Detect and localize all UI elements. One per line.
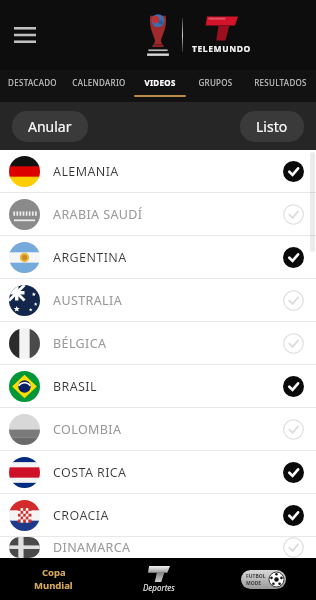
button[interactable]: BÉLGICA (0, 322, 316, 365)
button[interactable]: CALENDARIO (64, 70, 134, 102)
staticText: VIDEOS (144, 77, 176, 88)
button[interactable]: Listo (240, 111, 304, 142)
button[interactable]: Anular (12, 111, 88, 142)
button[interactable]: CROACIA (0, 494, 316, 537)
staticText: Anular (28, 117, 72, 136)
staticText: ARABIA SAUDÍ (53, 206, 283, 223)
staticText: COSTA RICA (53, 464, 283, 481)
staticText: DINAMARCA (53, 539, 283, 556)
staticText: CALENDARIO (72, 77, 126, 88)
staticText: FUTBOL (246, 573, 266, 580)
button[interactable]: GRUPOS (186, 70, 244, 102)
staticText: Copa (42, 566, 66, 579)
button[interactable]: VIDEOS (134, 70, 186, 102)
staticText: ARGENTINA (53, 249, 283, 266)
button[interactable]: ARGENTINA (0, 236, 316, 279)
button[interactable]: COSTA RICA (0, 451, 316, 494)
button[interactable]: BRASIL (0, 365, 316, 408)
staticText: COLOMBIA (53, 421, 283, 438)
button[interactable]: DINAMARCA (0, 537, 316, 558)
staticText: CROACIA (53, 507, 283, 524)
button[interactable]: ALEMANIA (0, 150, 316, 193)
staticText: RESULTADOS (254, 77, 307, 88)
staticText: Deportes (143, 582, 175, 593)
staticText: Mundial (34, 579, 73, 592)
button[interactable]: Telemundo Deportes (106, 558, 211, 600)
staticText: BRASIL (53, 378, 283, 395)
button[interactable]: RESULTADOS (244, 70, 316, 102)
button[interactable]: Fútbol Mode (211, 558, 316, 600)
button[interactable]: ARABIA SAUDÍ (0, 193, 316, 236)
button[interactable]: AUSTRALIA (0, 279, 316, 322)
staticText: MODE (246, 580, 262, 587)
button[interactable]: Menú (6, 16, 44, 54)
staticText: GRUPOS (198, 77, 233, 88)
staticText: AUSTRALIA (53, 292, 283, 309)
button[interactable]: COLOMBIA (0, 408, 316, 451)
staticText: TELEMUNDO (192, 43, 251, 55)
staticText: BÉLGICA (53, 335, 283, 352)
staticText: DESTACADO (8, 77, 57, 88)
button[interactable]: Copa (0, 558, 106, 600)
button[interactable]: DESTACADO (0, 70, 64, 102)
staticText: ALEMANIA (53, 163, 283, 180)
staticText: Listo (256, 117, 288, 136)
